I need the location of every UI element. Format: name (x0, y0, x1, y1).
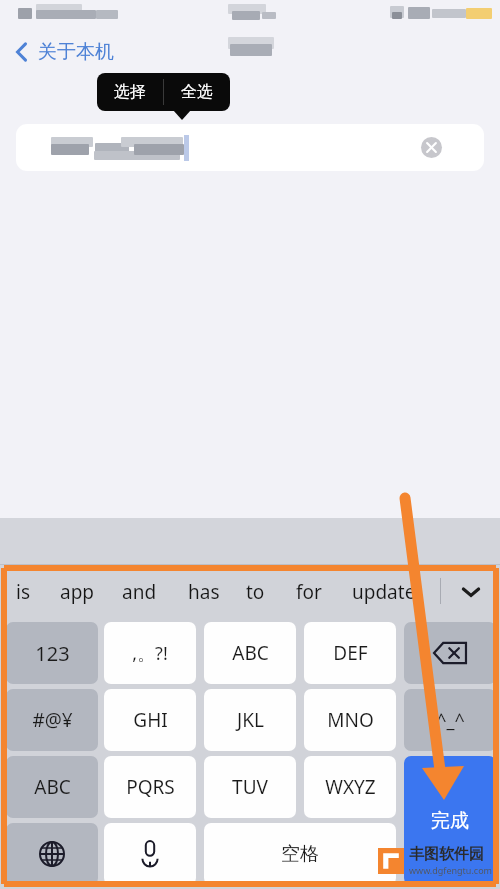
staticText: update (352, 579, 416, 605)
button[interactable]: for (296, 576, 322, 608)
staticText: is (16, 579, 31, 605)
staticText: to (246, 579, 265, 605)
staticText: 123 (35, 640, 70, 667)
staticText: 选择 (114, 82, 146, 102)
button[interactable]: 123 (6, 622, 98, 684)
staticText: WXYZ (325, 774, 376, 800)
button[interactable]: update (352, 576, 416, 608)
staticText: 空格 (281, 842, 319, 866)
button[interactable]: 完成 (404, 756, 496, 885)
staticText: MNO (327, 707, 374, 733)
button[interactable]: 选择 (97, 73, 163, 111)
staticText: TUV (232, 774, 268, 800)
button[interactable]: Back (0, 32, 190, 72)
other: Back (14, 40, 30, 64)
button[interactable]: has (188, 576, 220, 608)
staticText: and (122, 579, 157, 605)
button[interactable]: Clear text (421, 137, 442, 158)
button[interactable]: WXYZ (304, 756, 396, 818)
staticText: 丰图软件园 (409, 845, 484, 864)
button[interactable]: app (60, 576, 95, 608)
button[interactable]: Voice input (104, 823, 196, 885)
button[interactable]: PQRS (104, 756, 196, 818)
button[interactable]: ^_^ (404, 689, 496, 751)
button[interactable]: TUV (204, 756, 296, 818)
staticText: for (296, 579, 322, 605)
button[interactable]: 空格 (204, 823, 396, 885)
button[interactable]: Backspace (404, 622, 496, 684)
button[interactable]: Switch language (6, 823, 98, 885)
button[interactable]: ,。?! (104, 622, 196, 684)
button[interactable]: DEF (304, 622, 396, 684)
staticText: 全选 (181, 82, 213, 102)
staticText: app (60, 579, 95, 605)
button[interactable]: GHI (104, 689, 196, 751)
button[interactable]: to (246, 576, 265, 608)
button[interactable]: Expand candidates (455, 578, 487, 606)
staticText: www.dgfengtu.com (409, 864, 493, 876)
staticText: ABC (34, 774, 71, 800)
button[interactable]: is (16, 576, 31, 608)
staticText: GHI (133, 707, 168, 733)
button[interactable]: Clear text (16, 124, 484, 171)
staticText: ABC (232, 640, 269, 666)
button[interactable]: 全选 (164, 73, 230, 111)
staticText: has (188, 579, 220, 605)
staticText: #@¥ (32, 707, 73, 733)
staticText: PQRS (126, 774, 175, 800)
button[interactable]: ABC (6, 756, 98, 818)
staticText: 关于本机 (38, 40, 114, 64)
staticText: DEF (333, 640, 368, 666)
staticText: ^_^ (436, 708, 465, 733)
button[interactable]: #@¥ (6, 689, 98, 751)
staticText: 完成 (431, 809, 469, 833)
button[interactable]: ABC (204, 622, 296, 684)
staticText: JKL (237, 707, 264, 733)
staticText: ,。?! (132, 641, 168, 666)
button[interactable]: MNO (304, 689, 396, 751)
button[interactable]: and (122, 576, 157, 608)
button[interactable]: JKL (204, 689, 296, 751)
